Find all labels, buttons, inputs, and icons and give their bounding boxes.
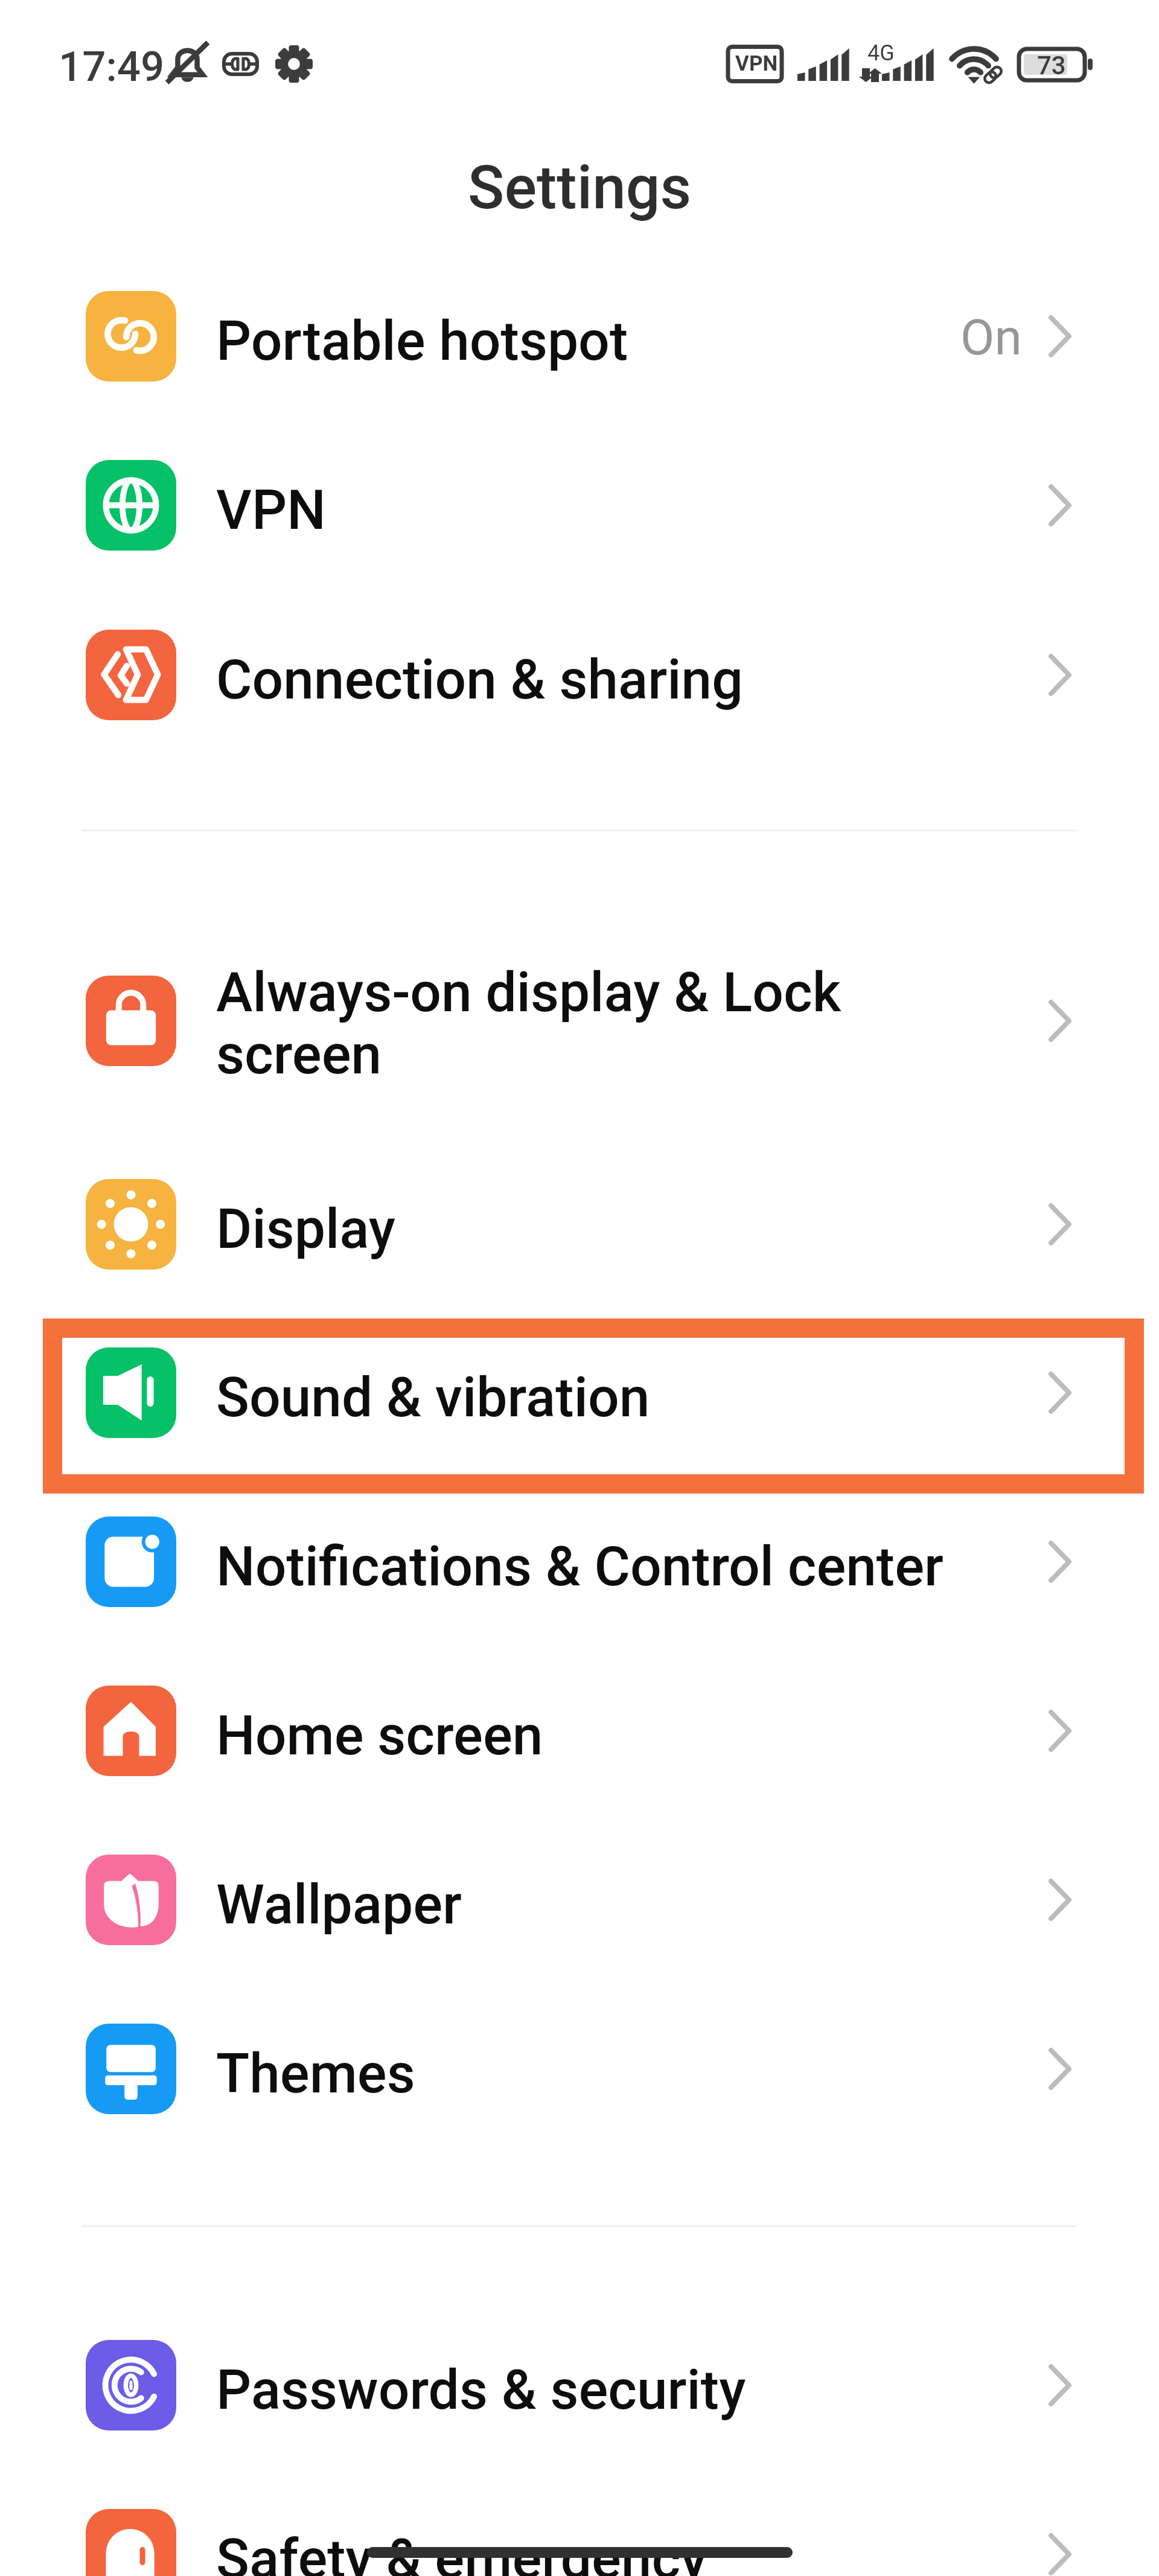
staticText: Settings [468, 152, 692, 223]
staticText: 73 [1037, 51, 1066, 80]
staticText: Display [216, 1197, 396, 1262]
button[interactable]: Connection & sharing [0, 590, 1159, 759]
button[interactable]: Display [0, 1140, 1159, 1309]
button[interactable]: Safety & emergency [0, 2470, 1159, 2576]
button[interactable]: Always-on display & Lock screen [0, 936, 1159, 1105]
button[interactable]: Home screen [0, 1646, 1159, 1815]
staticText: On [960, 308, 1022, 366]
button[interactable]: VPN [0, 421, 1159, 590]
staticText: Themes [216, 2042, 415, 2106]
staticText: Safety & emergency [216, 2527, 707, 2576]
staticText: Passwords & security [216, 2358, 746, 2423]
staticText: 4G [867, 40, 895, 66]
staticText: Always-on display & Lock screen [216, 960, 841, 1087]
button[interactable]: Notifications & Control center [0, 1477, 1159, 1646]
button[interactable]: Wallpaper [0, 1815, 1159, 1984]
staticText: VPN [735, 51, 778, 76]
staticText: Home screen [216, 1704, 543, 1768]
staticText: Portable hotspot [216, 309, 628, 374]
button[interactable]: Passwords & security [0, 2301, 1159, 2470]
staticText: VPN [216, 478, 326, 543]
button[interactable]: Themes [0, 1984, 1159, 2153]
staticText: Notifications & Control center [216, 1535, 943, 1599]
staticText: 17:49 [59, 42, 165, 91]
button[interactable]: Sound & vibration [0, 1308, 1159, 1477]
staticText: Sound & vibration [216, 1366, 650, 1430]
staticText: Wallpaper [216, 1873, 462, 1937]
button[interactable]: Portable hotspot [0, 252, 1159, 421]
staticText: Connection & sharing [216, 648, 743, 712]
